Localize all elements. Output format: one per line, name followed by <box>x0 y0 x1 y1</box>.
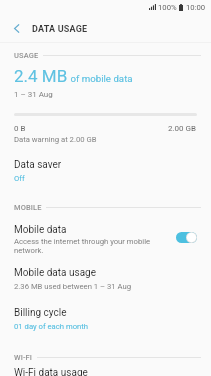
staticText: Off <box>14 174 25 183</box>
staticText: Access the internet through your mobile … <box>14 237 172 255</box>
staticText: 2.00 GB <box>168 124 197 133</box>
staticText: MOBILE <box>14 203 42 212</box>
button[interactable]: Mobile data toggle <box>176 232 197 243</box>
staticText: 01 day of each month <box>14 322 89 331</box>
staticText: Mobile data <box>14 224 67 236</box>
staticText: 100% <box>158 3 177 12</box>
staticText: 1 – 31 Aug <box>14 90 53 99</box>
button[interactable]: Mobile data usage <box>0 262 211 302</box>
staticText: DATA USAGE <box>32 24 88 35</box>
button[interactable]: Data saver <box>0 153 211 191</box>
staticText: 0 B <box>14 124 26 133</box>
staticText: Wi-Fi data usage <box>14 367 88 376</box>
staticText: Data saver <box>14 159 62 171</box>
staticText: 2.4 MB <box>14 66 68 86</box>
staticText: Mobile data usage <box>14 267 96 279</box>
staticText: Billing cycle <box>14 307 67 319</box>
staticText: WI-FI <box>14 353 33 362</box>
button[interactable]: Mobile data <box>0 218 211 262</box>
staticText: 10:00 <box>186 3 206 12</box>
staticText: Data warning at 2.00 GB <box>14 135 97 144</box>
staticText: 2.36 MB used between 1 – 31 Aug <box>14 282 132 291</box>
staticText: USAGE <box>14 51 39 60</box>
button[interactable]: Billing cycle <box>0 302 211 342</box>
button[interactable]: Back <box>0 14 32 42</box>
staticText: of mobile data <box>68 73 133 84</box>
